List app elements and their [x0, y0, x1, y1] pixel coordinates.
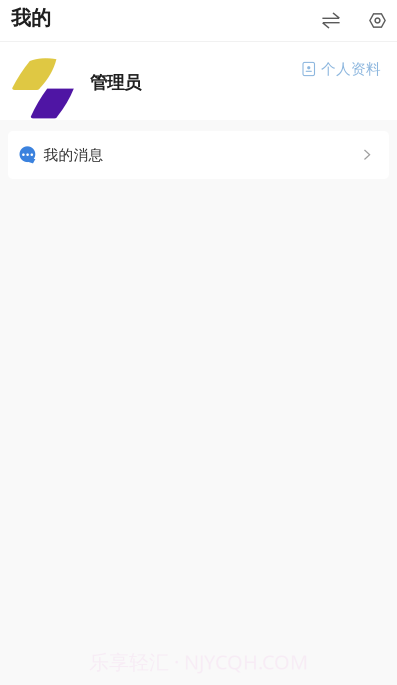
button[interactable]: Transfer: [304, 0, 358, 41]
staticText: 乐享轻汇 · NJYCQH.COM: [89, 648, 308, 675]
button[interactable]: 我的消息: [8, 131, 389, 179]
staticText: 管理员: [90, 72, 141, 93]
staticText: 我的: [11, 6, 51, 30]
button[interactable]: Settings: [358, 0, 397, 41]
staticText: 我的消息: [44, 146, 104, 164]
button[interactable]: 个人资料: [292, 52, 397, 86]
staticText: 个人资料: [321, 60, 381, 78]
